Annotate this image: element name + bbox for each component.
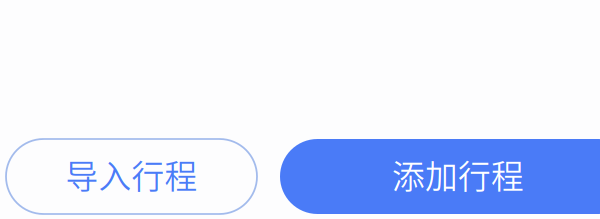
staticText: 添加行程 [392, 151, 524, 198]
button[interactable]: 添加行程 [280, 139, 600, 214]
button[interactable]: 导入行程 [6, 139, 257, 214]
staticText: 导入行程 [65, 151, 197, 198]
